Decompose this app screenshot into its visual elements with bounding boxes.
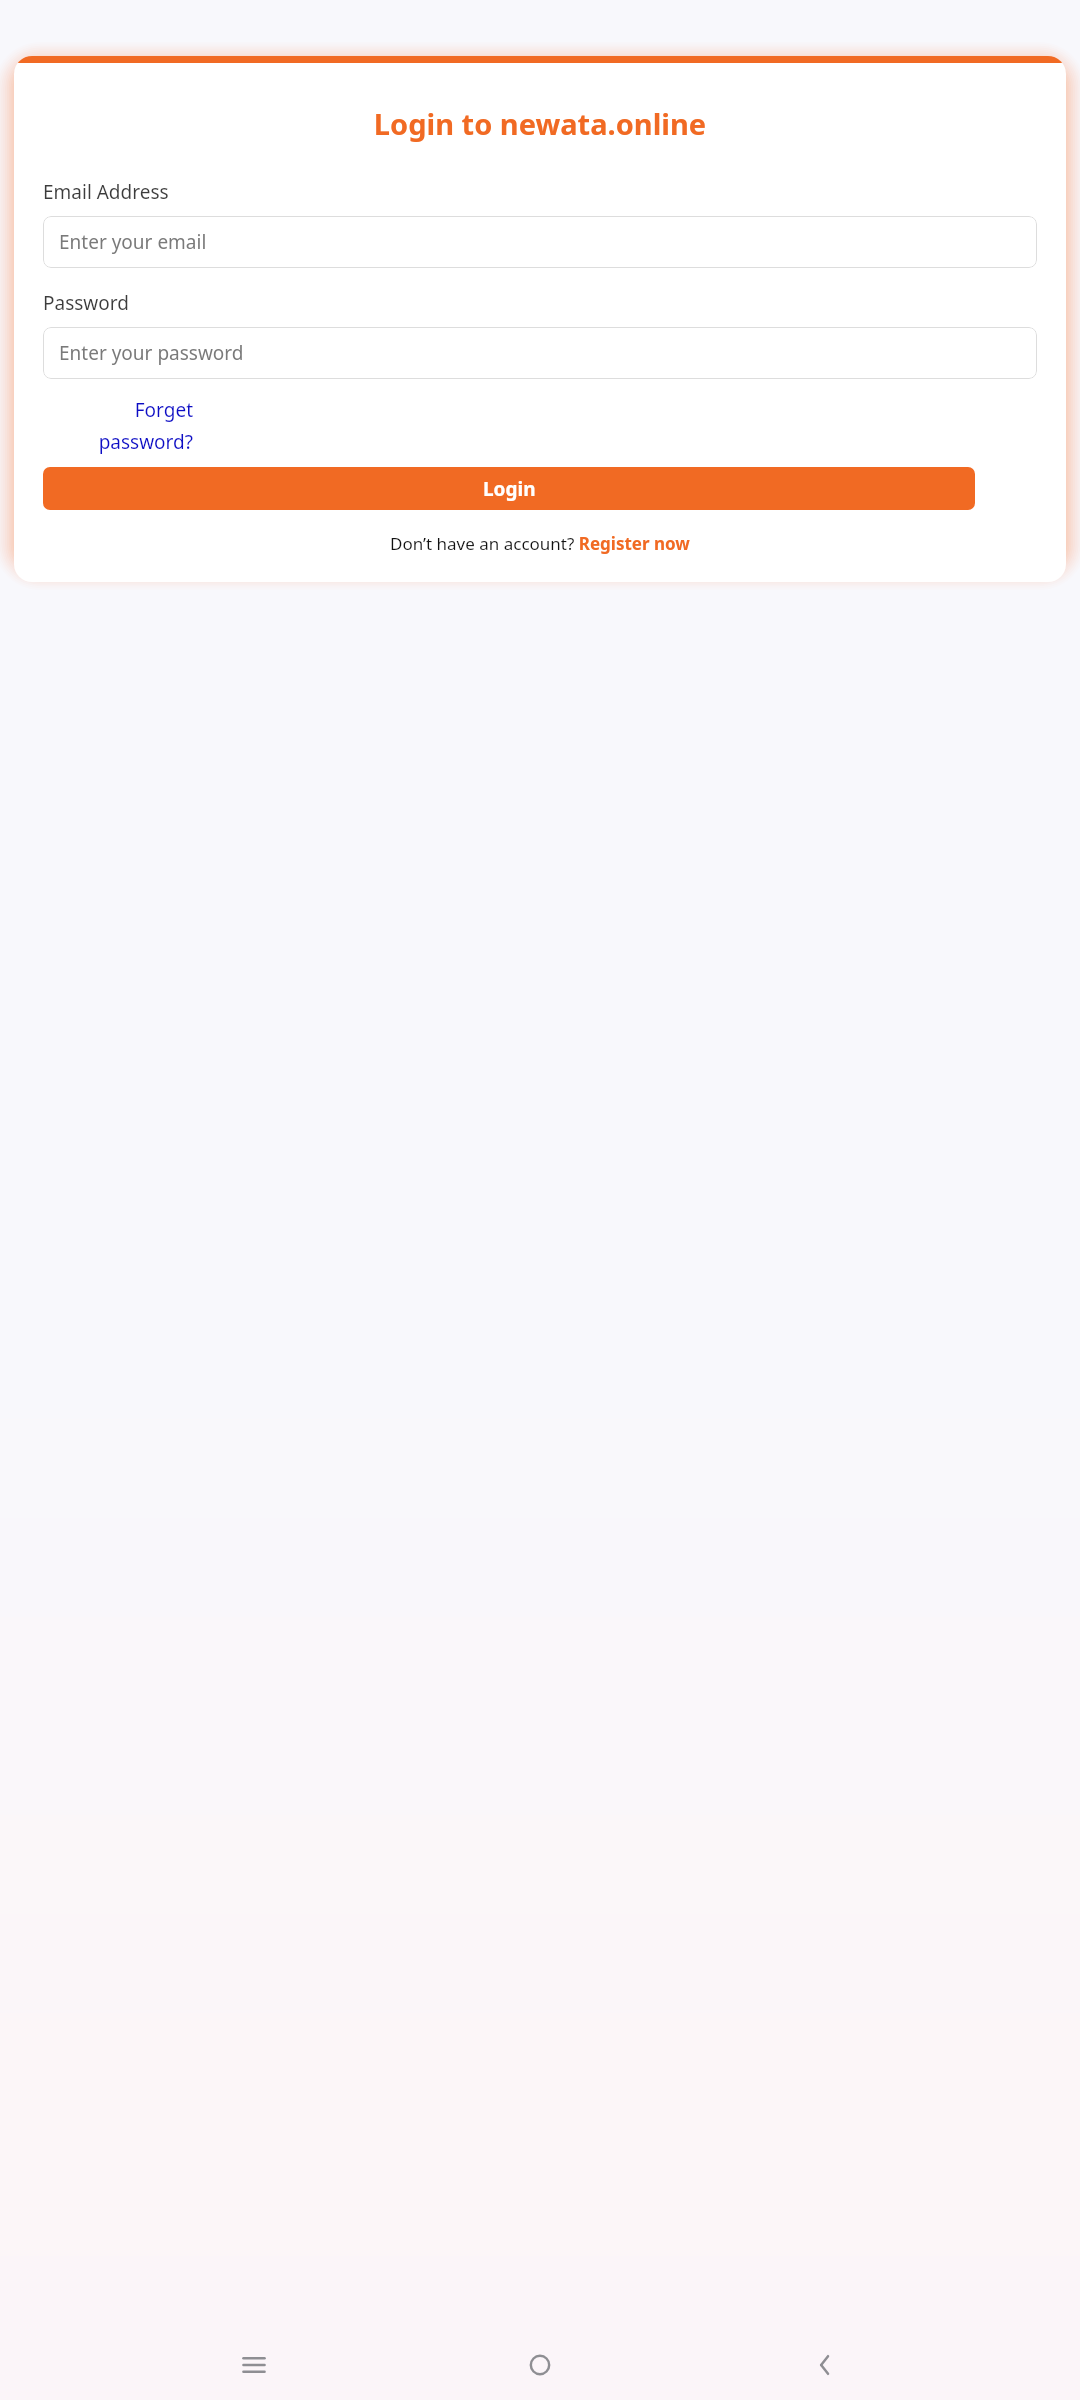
button[interactable]: Recent apps <box>222 2333 286 2397</box>
staticText: Don’t have an account? Register now <box>390 532 690 555</box>
staticText: Forget password? <box>43 397 193 455</box>
button[interactable]: Enter your email <box>43 216 1037 268</box>
staticText: Email Address <box>43 179 169 205</box>
button[interactable]: Back <box>794 2333 858 2397</box>
staticText: Login to newata.online <box>43 104 1037 143</box>
staticText: Login <box>483 476 536 502</box>
button[interactable]: Login <box>43 467 975 510</box>
button[interactable]: Enter your password <box>43 327 1037 379</box>
button[interactable]: Home <box>508 2333 572 2397</box>
button[interactable]: Don’t have an account? Register now <box>43 532 1037 555</box>
staticText: Password <box>43 290 129 316</box>
staticText: Enter your password <box>59 340 244 366</box>
button[interactable]: Forget password? <box>43 397 1037 455</box>
staticText: Enter your email <box>59 229 207 255</box>
